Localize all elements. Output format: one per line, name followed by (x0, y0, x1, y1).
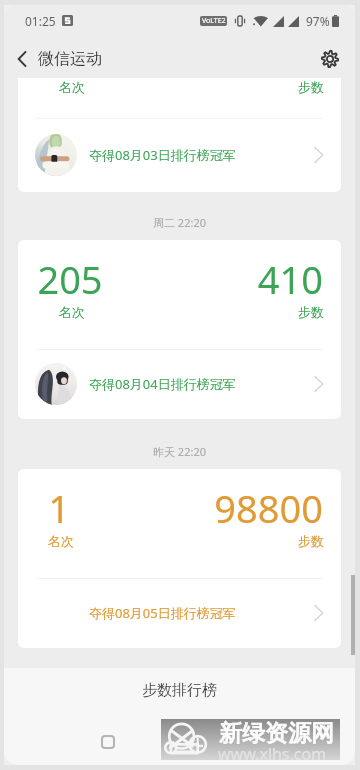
staticText: 205 (34, 253, 106, 305)
staticText: 410 (138, 253, 323, 305)
staticText: VoLTE2 (202, 16, 226, 26)
staticText: 夺得08月04日排行榜冠军 (89, 375, 236, 393)
staticText: www.xlhs.com (218, 743, 327, 765)
staticText: 新绿资源网 (219, 719, 334, 748)
staticText: 微信运动 (38, 49, 102, 69)
staticText: 名次 (25, 533, 97, 549)
button[interactable]: Back (4, 39, 355, 78)
button[interactable]: 步数排行榜 (4, 668, 355, 712)
staticText: 步数 (138, 304, 324, 320)
staticText: 步数 (138, 79, 324, 95)
staticText: 1 (23, 482, 95, 534)
staticText: 步数排行榜 (142, 681, 217, 700)
staticText: 周二 22:20 (4, 215, 355, 230)
staticText: 01:25 (25, 13, 56, 29)
button[interactable]: 夺得08月04日排行榜冠军 (18, 349, 341, 419)
button[interactable]: 夺得08月03日排行榜冠军 (18, 118, 341, 192)
staticText: 98800 (138, 482, 323, 534)
staticText: 夺得08月05日排行榜冠军 (89, 604, 236, 622)
button[interactable]: Recents (101, 735, 115, 749)
button[interactable]: 夺得08月05日排行榜冠军 (18, 578, 341, 648)
other: Back (18, 52, 26, 66)
staticText: 夺得08月03日排行榜冠军 (89, 146, 236, 164)
staticText: 名次 (36, 79, 108, 95)
staticText: 步数 (138, 533, 324, 549)
staticText: 昨天 22:20 (4, 444, 355, 459)
staticText: 97% (306, 13, 330, 29)
staticText: 名次 (36, 304, 108, 320)
button[interactable]: Settings (312, 39, 348, 78)
